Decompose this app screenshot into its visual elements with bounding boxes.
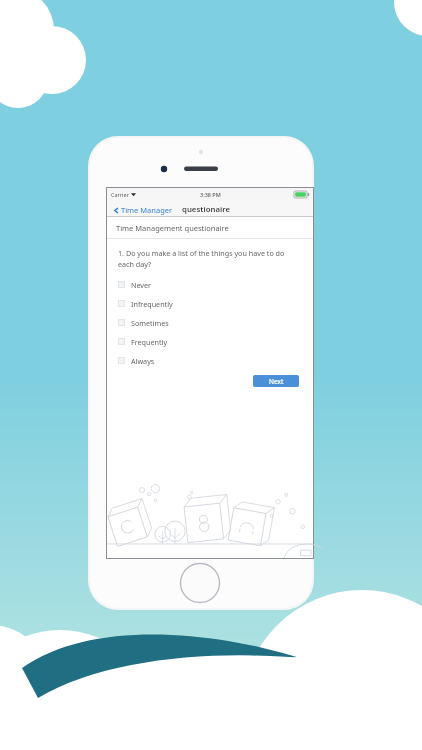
staticText: Always (131, 356, 155, 366)
button[interactable]: Next (253, 375, 299, 387)
button[interactable]: Always (107, 351, 313, 370)
other: Back (113, 207, 120, 214)
button[interactable]: Sometimes (107, 313, 313, 332)
staticText: Frequently (131, 337, 168, 347)
staticText: 3:38 PM (200, 191, 221, 198)
staticText: 1. Do you make a list of the things you … (118, 248, 297, 269)
staticText: Time Manager (121, 205, 173, 215)
staticText: Carrier (111, 191, 129, 198)
button[interactable]: Frequently (107, 332, 313, 351)
staticText: Sometimes (131, 318, 169, 328)
staticText: Time Management questionaire (116, 223, 229, 233)
button[interactable]: Never (107, 275, 313, 294)
button[interactable]: Infrequently (107, 294, 313, 313)
staticText: Never (131, 280, 152, 290)
button[interactable]: Back (111, 205, 175, 215)
staticText: Infrequently (131, 299, 173, 309)
staticText: Next (269, 377, 284, 386)
staticText: questionaire (182, 204, 230, 215)
